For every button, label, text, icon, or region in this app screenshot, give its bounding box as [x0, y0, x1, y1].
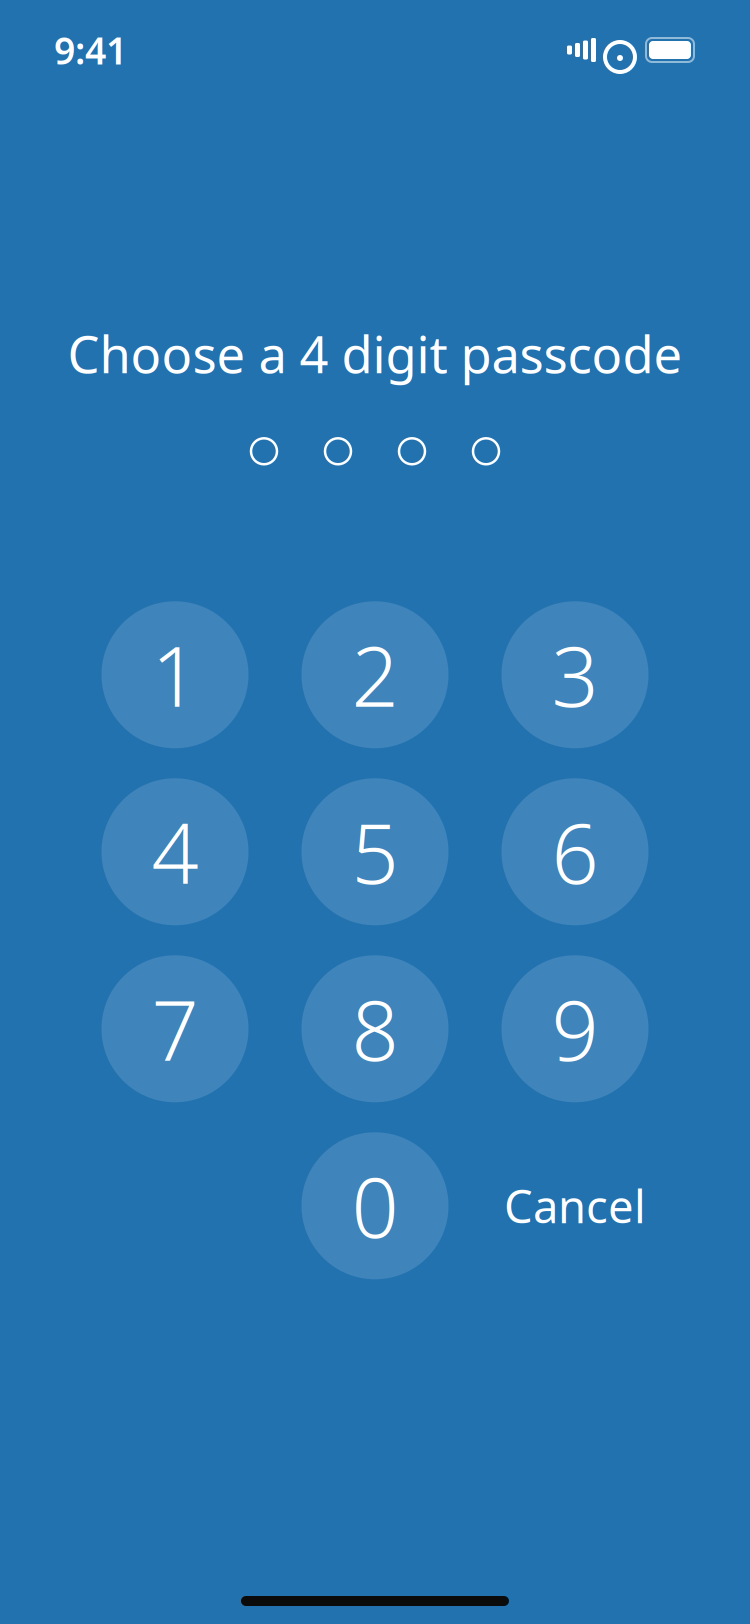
button[interactable]: 5	[301, 778, 448, 925]
staticText: 8	[351, 974, 398, 1084]
staticText: 9:41	[54, 25, 127, 75]
staticText: 2	[351, 620, 398, 730]
button[interactable]: 1	[101, 601, 248, 748]
button[interactable]: Cancel	[501, 1132, 648, 1279]
button[interactable]: 3	[501, 601, 648, 748]
staticText: 5	[351, 797, 398, 907]
staticText: Cancel	[504, 1176, 646, 1236]
button[interactable]: 8	[301, 955, 448, 1102]
staticText: 6	[551, 797, 598, 907]
staticText: Choose a 4 digit passcode	[67, 320, 682, 387]
button[interactable]: 9	[501, 955, 648, 1102]
staticText: 4	[151, 797, 198, 907]
button[interactable]: 2	[301, 601, 448, 748]
staticText: 3	[551, 620, 598, 730]
button[interactable]: 4	[101, 778, 248, 925]
staticText: 0	[351, 1151, 398, 1261]
staticText: 9	[551, 974, 598, 1084]
button[interactable]: 7	[101, 955, 248, 1102]
staticText: 7	[151, 974, 198, 1084]
staticText: 1	[151, 620, 198, 730]
button[interactable]: 0	[301, 1132, 448, 1279]
button[interactable]: 6	[501, 778, 648, 925]
